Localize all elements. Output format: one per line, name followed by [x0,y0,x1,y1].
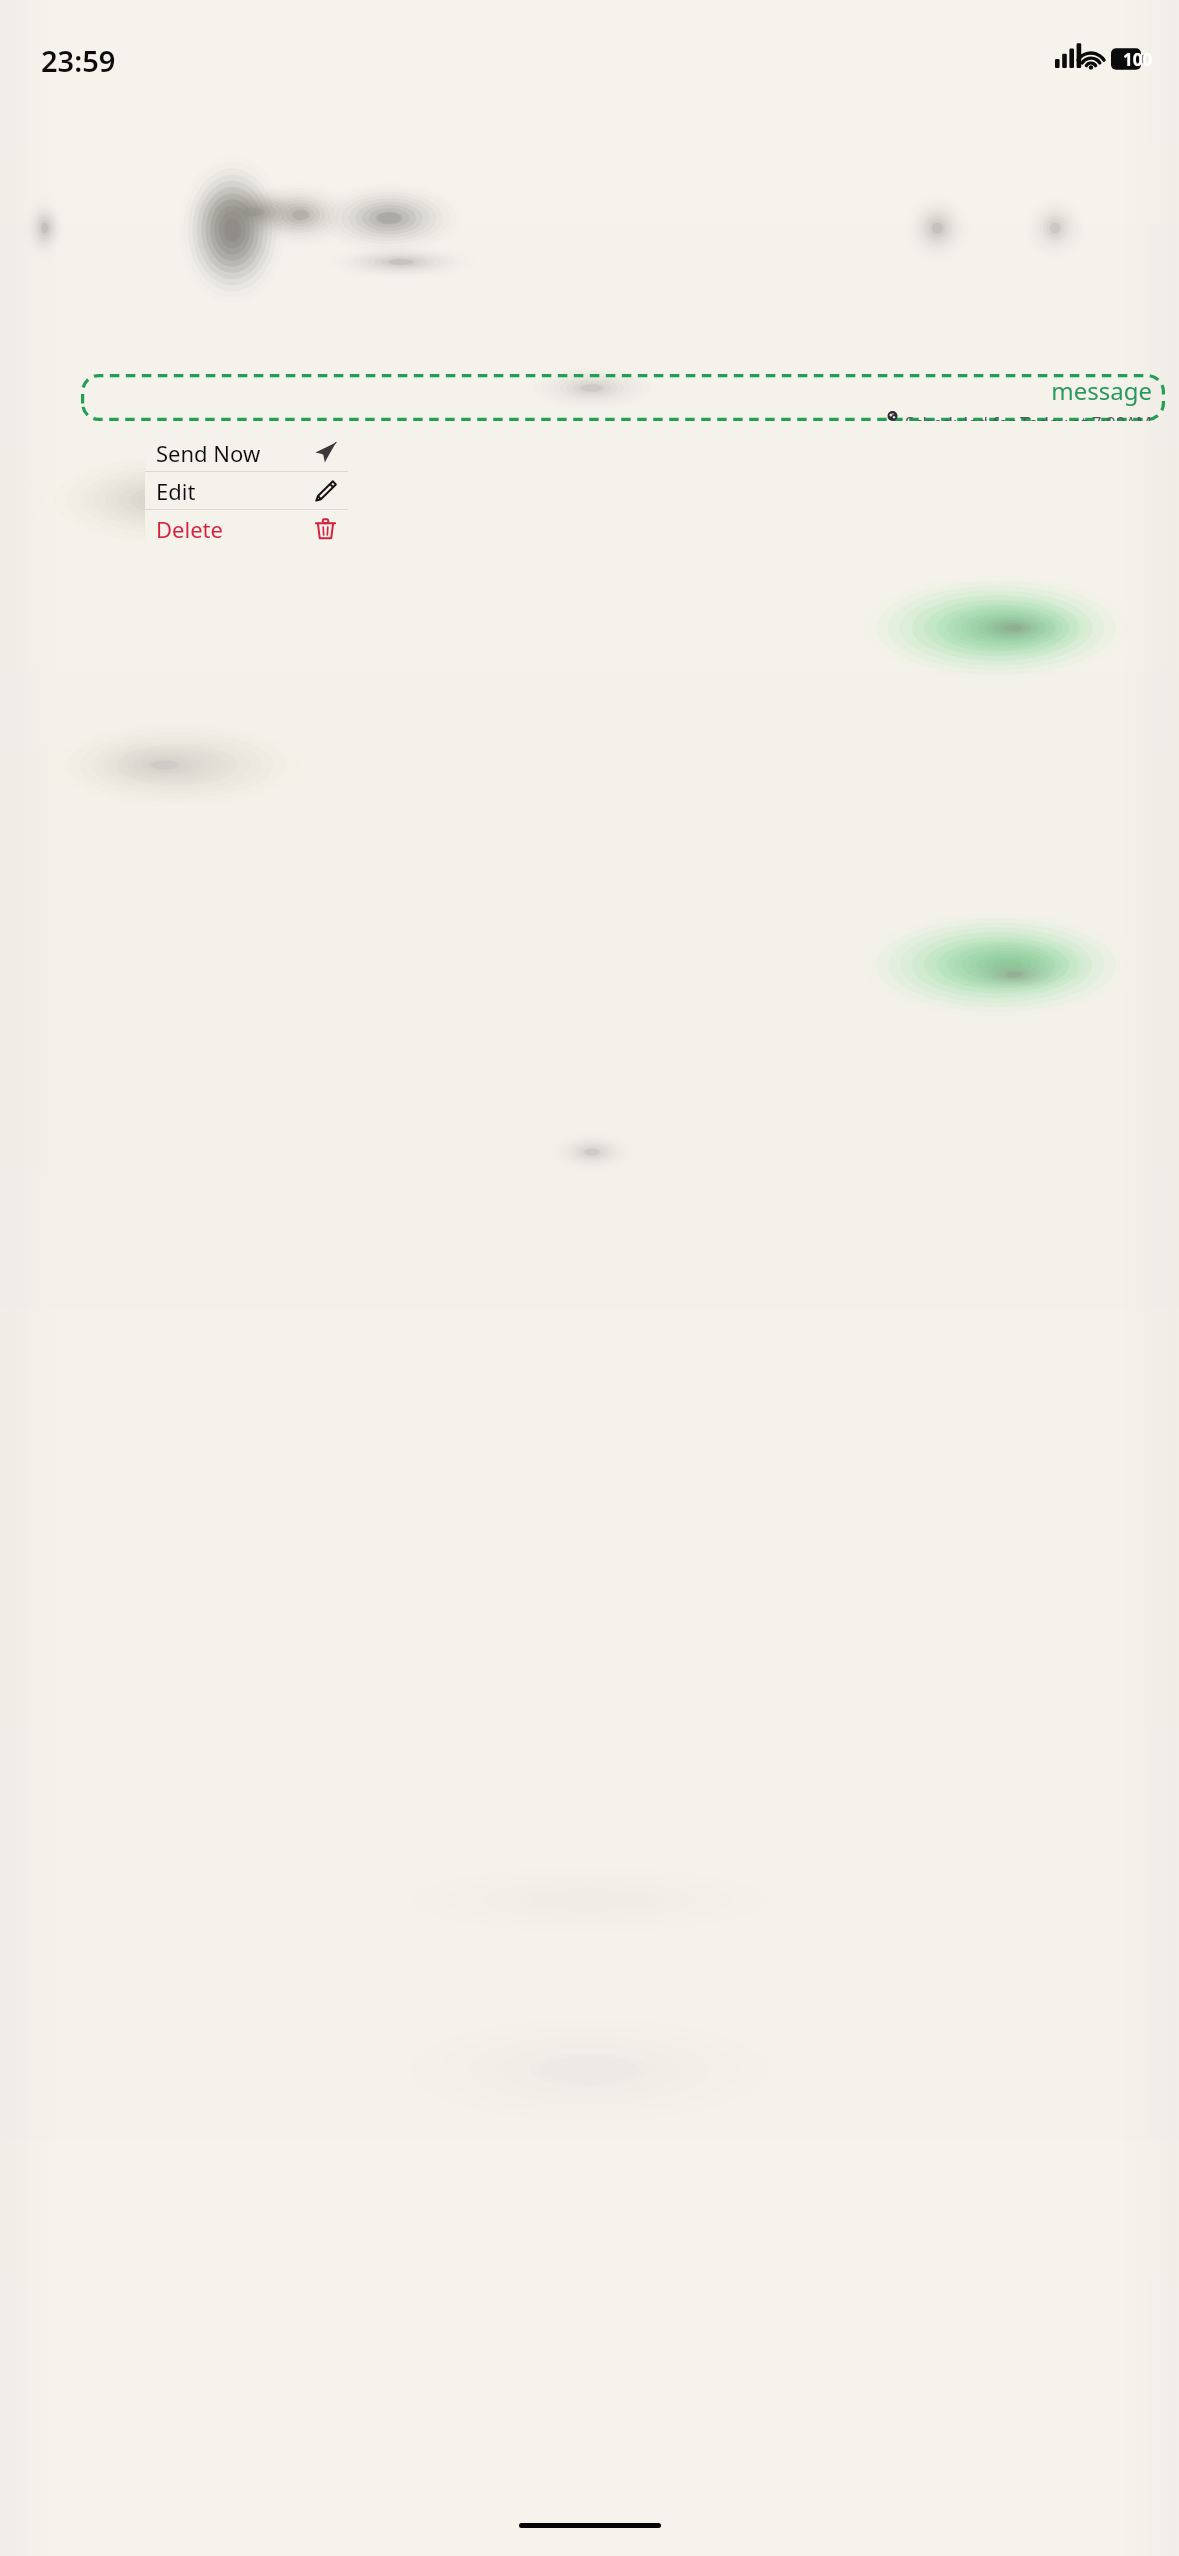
button[interactable]: Edit [145,472,348,509]
staticText: Send Now [156,438,261,468]
staticText: 100 [1123,48,1153,71]
staticText: message [1051,374,1152,407]
button[interactable]: Send Now [145,434,348,471]
button[interactable]: Delete [145,510,348,547]
staticText: Delete [156,514,223,544]
staticText: Scheduled for Today at 7:00AM [905,411,1152,421]
button[interactable]: message [81,374,1165,421]
staticText: Edit [156,476,196,506]
staticText: 23:59 [41,41,116,80]
